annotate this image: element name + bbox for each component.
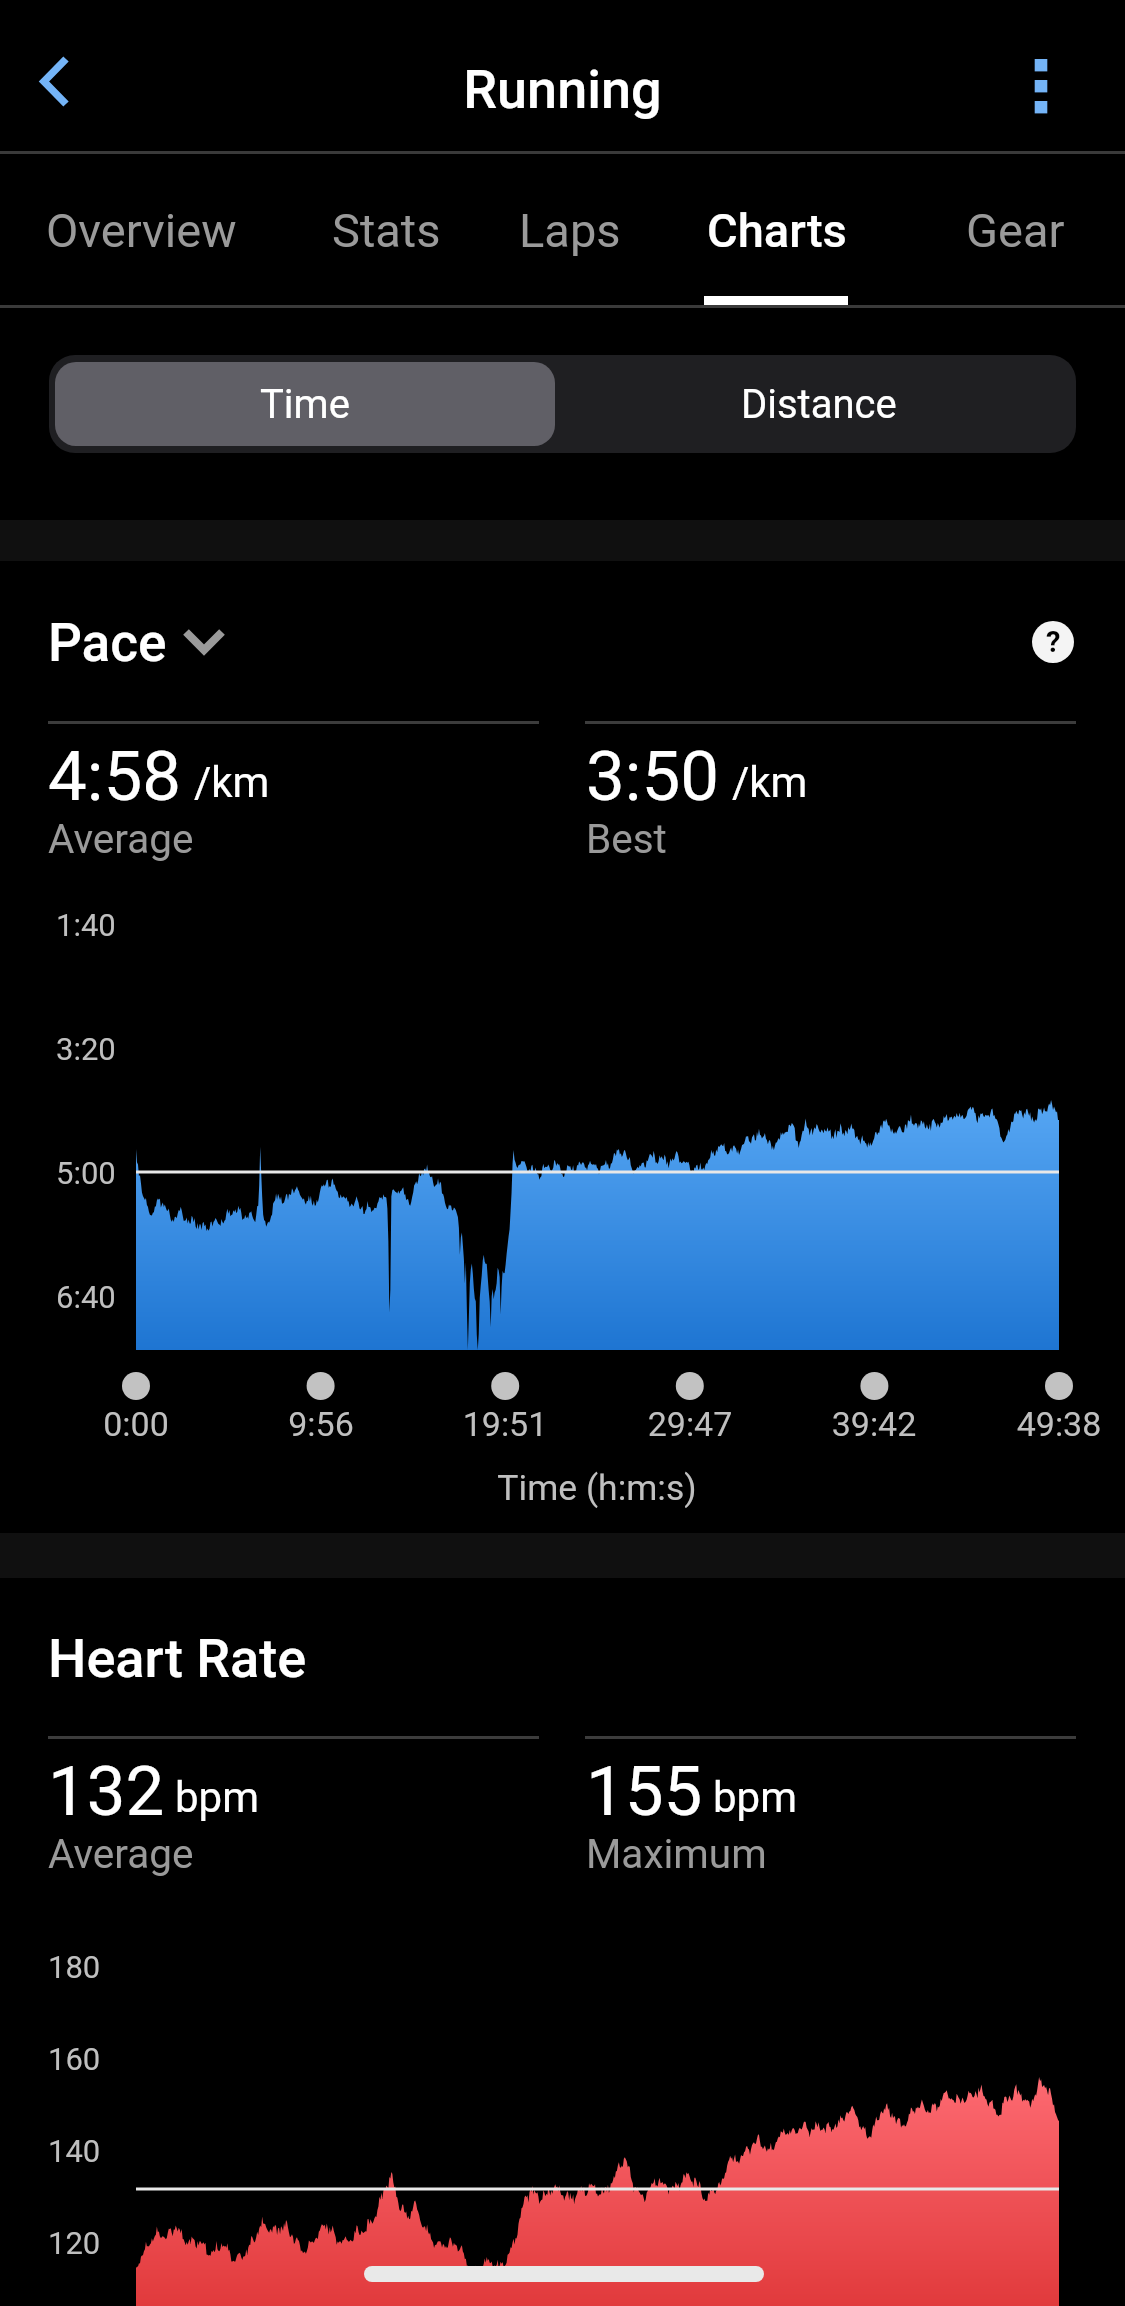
staticText: 0:00 (36, 1404, 236, 1444)
staticText: Gear (966, 203, 1065, 258)
button[interactable]: More options (975, 12, 1115, 152)
button[interactable]: Back (0, 12, 140, 152)
button[interactable]: Help (1013, 602, 1093, 682)
staticText: 4:58 (48, 736, 182, 817)
staticText: Average (48, 1830, 194, 1877)
button[interactable]: Stats (306, 153, 466, 307)
staticText: /km (732, 758, 808, 807)
staticText: 5:00 (56, 1155, 116, 1191)
staticText: Running (430, 58, 695, 121)
staticText: Heart Rate (48, 1627, 307, 1690)
staticText: 6:40 (56, 1279, 116, 1315)
staticText: Overview (46, 203, 237, 258)
staticText: 1:40 (56, 907, 116, 943)
staticText: Stats (332, 203, 441, 258)
staticText: Best (586, 815, 667, 862)
staticText: 19:51 (405, 1404, 605, 1444)
staticText: Average (48, 815, 194, 862)
staticText: 155 (586, 1751, 703, 1832)
staticText: /km (194, 758, 270, 807)
staticText: Maximum (586, 1830, 767, 1877)
staticText: 3:50 (586, 736, 720, 817)
button[interactable]: Pace (30, 600, 245, 686)
button[interactable]: Time (55, 362, 555, 446)
staticText: 120 (48, 2225, 101, 2261)
staticText: ? (1046, 625, 1061, 659)
button[interactable]: Laps (495, 153, 645, 307)
staticText: Charts (707, 203, 847, 258)
staticText: Laps (519, 203, 621, 258)
button[interactable]: Overview (26, 153, 256, 307)
button[interactable]: Distance (562, 355, 1076, 453)
staticText: bpm (713, 1773, 797, 1822)
staticText: bpm (175, 1773, 259, 1822)
staticText: Time (260, 381, 350, 428)
button[interactable]: Gear (940, 153, 1090, 307)
staticText: 140 (48, 2133, 101, 2169)
staticText: Time (h:m:s) (362, 1467, 832, 1509)
staticText: Pace (48, 612, 167, 674)
staticText: 160 (48, 2041, 101, 2077)
staticText: 180 (48, 1949, 101, 1985)
staticText: 39:42 (774, 1404, 974, 1444)
staticText: 3:20 (56, 1031, 116, 1067)
staticText: 9:56 (221, 1404, 421, 1444)
staticText: 29:47 (590, 1404, 790, 1444)
staticText: 132 (48, 1751, 165, 1832)
staticText: Distance (741, 381, 897, 428)
button[interactable]: Charts (682, 153, 872, 307)
staticText: 49:38 (959, 1404, 1125, 1444)
